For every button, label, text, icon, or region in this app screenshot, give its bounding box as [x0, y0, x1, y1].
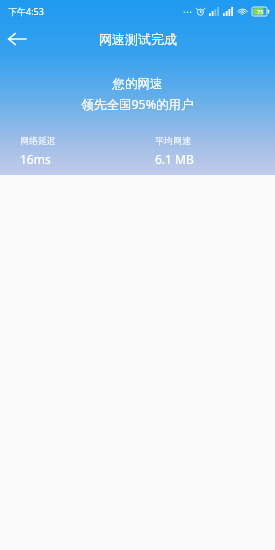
- staticText: 平均网速: [155, 135, 191, 146]
- staticText: 网速测试完成: [99, 31, 177, 47]
- staticText: 下午4:53: [8, 5, 44, 17]
- button[interactable]: Back: [0, 22, 34, 56]
- staticText: 您的网速: [0, 76, 275, 92]
- staticText: 75: [257, 8, 264, 15]
- staticText: 网络延迟: [20, 135, 56, 146]
- staticText: 16ms: [20, 151, 51, 167]
- staticText: 领先全国95%的用户: [0, 96, 275, 113]
- staticText: 6.1 MB: [155, 151, 194, 167]
